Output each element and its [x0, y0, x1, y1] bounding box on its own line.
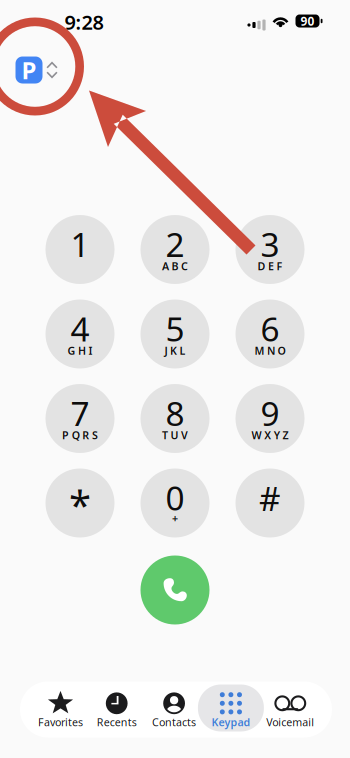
button[interactable]: 5: [140, 299, 209, 368]
staticText: Z: [282, 428, 288, 442]
button[interactable]: Line P: [15, 56, 42, 83]
staticText: K: [170, 343, 177, 358]
staticText: P: [62, 428, 69, 442]
staticText: Voicemail: [266, 715, 314, 729]
staticText: 1: [70, 222, 89, 266]
staticText: F: [277, 259, 283, 273]
button[interactable]: 2: [140, 215, 209, 284]
staticText: 9: [260, 391, 279, 435]
staticText: R: [82, 428, 89, 442]
staticText: 3: [260, 222, 279, 266]
staticText: T: [162, 428, 168, 442]
staticText: +: [172, 511, 178, 525]
button[interactable]: *: [45, 468, 114, 537]
staticText: E: [268, 259, 274, 273]
staticText: 2: [165, 222, 184, 266]
staticText: V: [181, 428, 188, 442]
button[interactable]: 7: [45, 384, 114, 453]
button[interactable]: 4: [45, 299, 114, 368]
staticText: 5: [165, 306, 184, 351]
button[interactable]: 3: [235, 215, 304, 284]
staticText: 4: [70, 306, 89, 351]
staticText: J: [164, 343, 167, 358]
staticText: 0: [165, 475, 184, 520]
staticText: Contacts: [152, 715, 196, 729]
staticText: Q: [72, 428, 80, 442]
staticText: S: [92, 428, 98, 442]
staticText: C: [181, 259, 188, 273]
button[interactable]: Call: [140, 555, 209, 624]
button[interactable]: 9: [235, 384, 304, 453]
button[interactable]: 1: [45, 215, 114, 284]
button[interactable]: Recents: [89, 684, 145, 731]
staticText: 8: [165, 391, 184, 435]
staticText: 9:28: [64, 9, 103, 35]
staticText: #: [259, 476, 281, 520]
button[interactable]: 6: [235, 299, 304, 368]
staticText: L: [180, 343, 186, 358]
staticText: G: [67, 343, 75, 358]
staticText: 7: [70, 391, 89, 435]
button[interactable]: Favorites: [32, 684, 88, 731]
button[interactable]: Contacts: [146, 684, 202, 731]
button[interactable]: Voicemail: [262, 684, 318, 731]
button[interactable]: Switch line: [46, 60, 58, 80]
staticText: W: [252, 428, 262, 442]
staticText: 90: [300, 13, 314, 29]
staticText: O: [278, 343, 286, 358]
staticText: I: [89, 343, 93, 358]
button[interactable]: Keypad: [198, 684, 264, 731]
staticText: P: [21, 54, 36, 86]
staticText: Keypad: [211, 715, 250, 729]
staticText: M: [254, 343, 264, 358]
staticText: 6: [260, 306, 279, 351]
staticText: X: [264, 428, 271, 442]
button[interactable]: 0: [140, 468, 209, 537]
staticText: H: [78, 343, 86, 358]
staticText: N: [267, 343, 275, 358]
staticText: B: [171, 259, 178, 273]
staticText: Favorites: [38, 715, 83, 729]
staticText: D: [257, 259, 265, 273]
staticText: U: [170, 428, 178, 442]
staticText: A: [162, 259, 169, 273]
button[interactable]: 8: [140, 384, 209, 453]
staticText: Y: [274, 428, 280, 442]
staticText: Recents: [97, 715, 137, 729]
button[interactable]: #: [235, 468, 304, 537]
staticText: *: [69, 477, 91, 530]
